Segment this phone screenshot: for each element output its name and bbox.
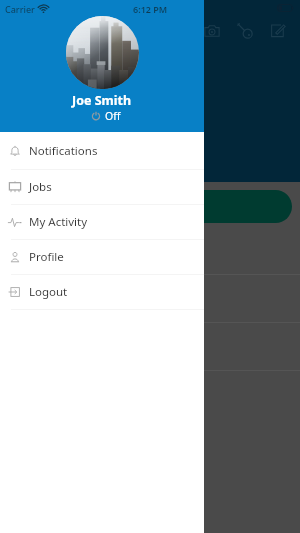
button[interactable]: Compose [261, 14, 294, 47]
staticText: Notifications [29, 143, 98, 159]
staticText: Carrier [5, 3, 35, 15]
button[interactable]: Profile photo [66, 16, 139, 89]
button[interactable]: Off [91, 109, 121, 123]
staticText: Jobs [29, 179, 52, 195]
button[interactable]: Jobs [0, 170, 204, 205]
button[interactable]: Profile [0, 240, 204, 275]
button[interactable]: Key [228, 14, 261, 47]
button[interactable]: Notifications [0, 132, 204, 170]
button[interactable]: Logout [0, 275, 204, 310]
button[interactable] [0, 190, 292, 223]
staticText: 6:12 PM [133, 3, 168, 15]
staticText: My Activity [29, 214, 88, 230]
button[interactable]: My Activity [0, 205, 204, 240]
button[interactable]: Camera [195, 14, 228, 47]
staticText: Joe Smith [72, 92, 132, 109]
staticText: Profile [29, 249, 64, 265]
staticText: Logout [29, 284, 68, 300]
staticText: Off [105, 109, 121, 123]
